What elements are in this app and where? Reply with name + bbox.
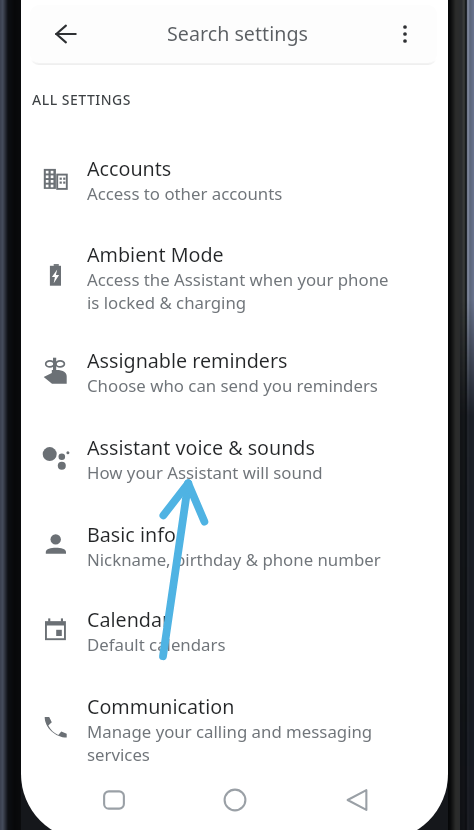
button[interactable]: Back — [30, 5, 437, 63]
staticText: Assistant voice & sounds — [87, 434, 315, 461]
button[interactable]: More options — [389, 18, 421, 50]
button[interactable]: Home — [209, 774, 261, 826]
button[interactable]: Communication — [21, 681, 448, 777]
button[interactable]: Calendar — [21, 594, 448, 668]
button[interactable]: Back — [331, 774, 383, 826]
staticText: Search settings — [167, 20, 308, 47]
staticText: Basic info — [87, 521, 176, 548]
staticText: Accounts — [87, 155, 172, 182]
staticText: Nickname, birthday & phone number — [87, 548, 381, 571]
staticText: Choose who can send you reminders — [87, 374, 378, 397]
staticText: Access to other accounts — [87, 182, 283, 205]
staticText: Manage your calling and messaging servic… — [87, 720, 373, 766]
button[interactable]: Back — [49, 17, 83, 51]
button[interactable]: Assistant voice & sounds — [21, 422, 448, 496]
staticText: Access the Assistant when your phone is … — [87, 268, 389, 314]
button[interactable]: Assignable reminders — [21, 335, 448, 409]
button[interactable]: Basic info — [21, 509, 448, 583]
button[interactable]: Ambient Mode — [21, 229, 448, 325]
staticText: How your Assistant will sound — [87, 461, 323, 484]
staticText: Assignable reminders — [87, 347, 288, 374]
button[interactable]: Accounts — [21, 143, 448, 217]
button[interactable]: Recent apps — [88, 774, 140, 826]
staticText: ALL SETTINGS — [32, 90, 131, 109]
staticText: Communication — [87, 693, 235, 720]
staticText: Calendar — [87, 606, 171, 633]
staticText: Default calendars — [87, 633, 226, 656]
staticText: Ambient Mode — [87, 241, 224, 268]
